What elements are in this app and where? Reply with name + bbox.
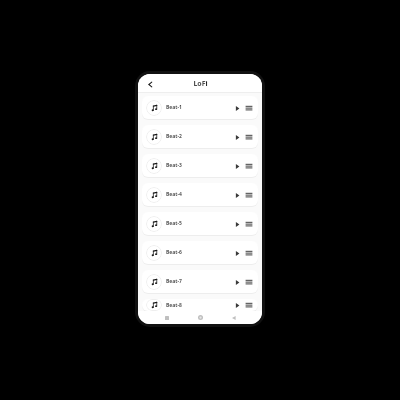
- button[interactable]: More options: [244, 132, 254, 142]
- button[interactable]: Play: [232, 132, 242, 142]
- staticText: Beat-3: [166, 162, 232, 169]
- button[interactable]: More options: [244, 300, 254, 310]
- button[interactable]: More options: [244, 103, 254, 113]
- button[interactable]: Beat-7: [142, 270, 258, 293]
- button[interactable]: Beat-8: [142, 299, 258, 311]
- button[interactable]: More options: [244, 248, 254, 258]
- button[interactable]: Home: [195, 312, 206, 323]
- staticText: Beat-4: [166, 191, 232, 198]
- staticText: Beat-5: [166, 220, 232, 227]
- button[interactable]: Play: [232, 161, 242, 171]
- button[interactable]: More options: [244, 277, 254, 287]
- button[interactable]: Beat-3: [142, 154, 258, 177]
- button[interactable]: Recent apps: [161, 312, 172, 323]
- button[interactable]: Play: [232, 190, 242, 200]
- button[interactable]: Play: [232, 103, 242, 113]
- staticText: Beat-6: [166, 249, 232, 256]
- button[interactable]: Back: [143, 77, 157, 91]
- staticText: Beat-2: [166, 133, 232, 140]
- button[interactable]: Back: [228, 312, 239, 323]
- button[interactable]: Play: [232, 219, 242, 229]
- button[interactable]: Play: [232, 300, 242, 310]
- button[interactable]: Beat-2: [142, 125, 258, 148]
- staticText: Beat-8: [166, 302, 232, 309]
- button[interactable]: Play: [232, 277, 242, 287]
- button[interactable]: More options: [244, 190, 254, 200]
- button[interactable]: Beat-6: [142, 241, 258, 264]
- staticText: Beat-7: [166, 278, 232, 285]
- button[interactable]: More options: [244, 161, 254, 171]
- button[interactable]: Play: [232, 248, 242, 258]
- button[interactable]: Beat-5: [142, 212, 258, 235]
- staticText: LoFi: [193, 79, 208, 89]
- button[interactable]: More options: [244, 219, 254, 229]
- staticText: Beat-1: [166, 104, 232, 111]
- button[interactable]: Beat-1: [142, 96, 258, 119]
- button[interactable]: Beat-4: [142, 183, 258, 206]
